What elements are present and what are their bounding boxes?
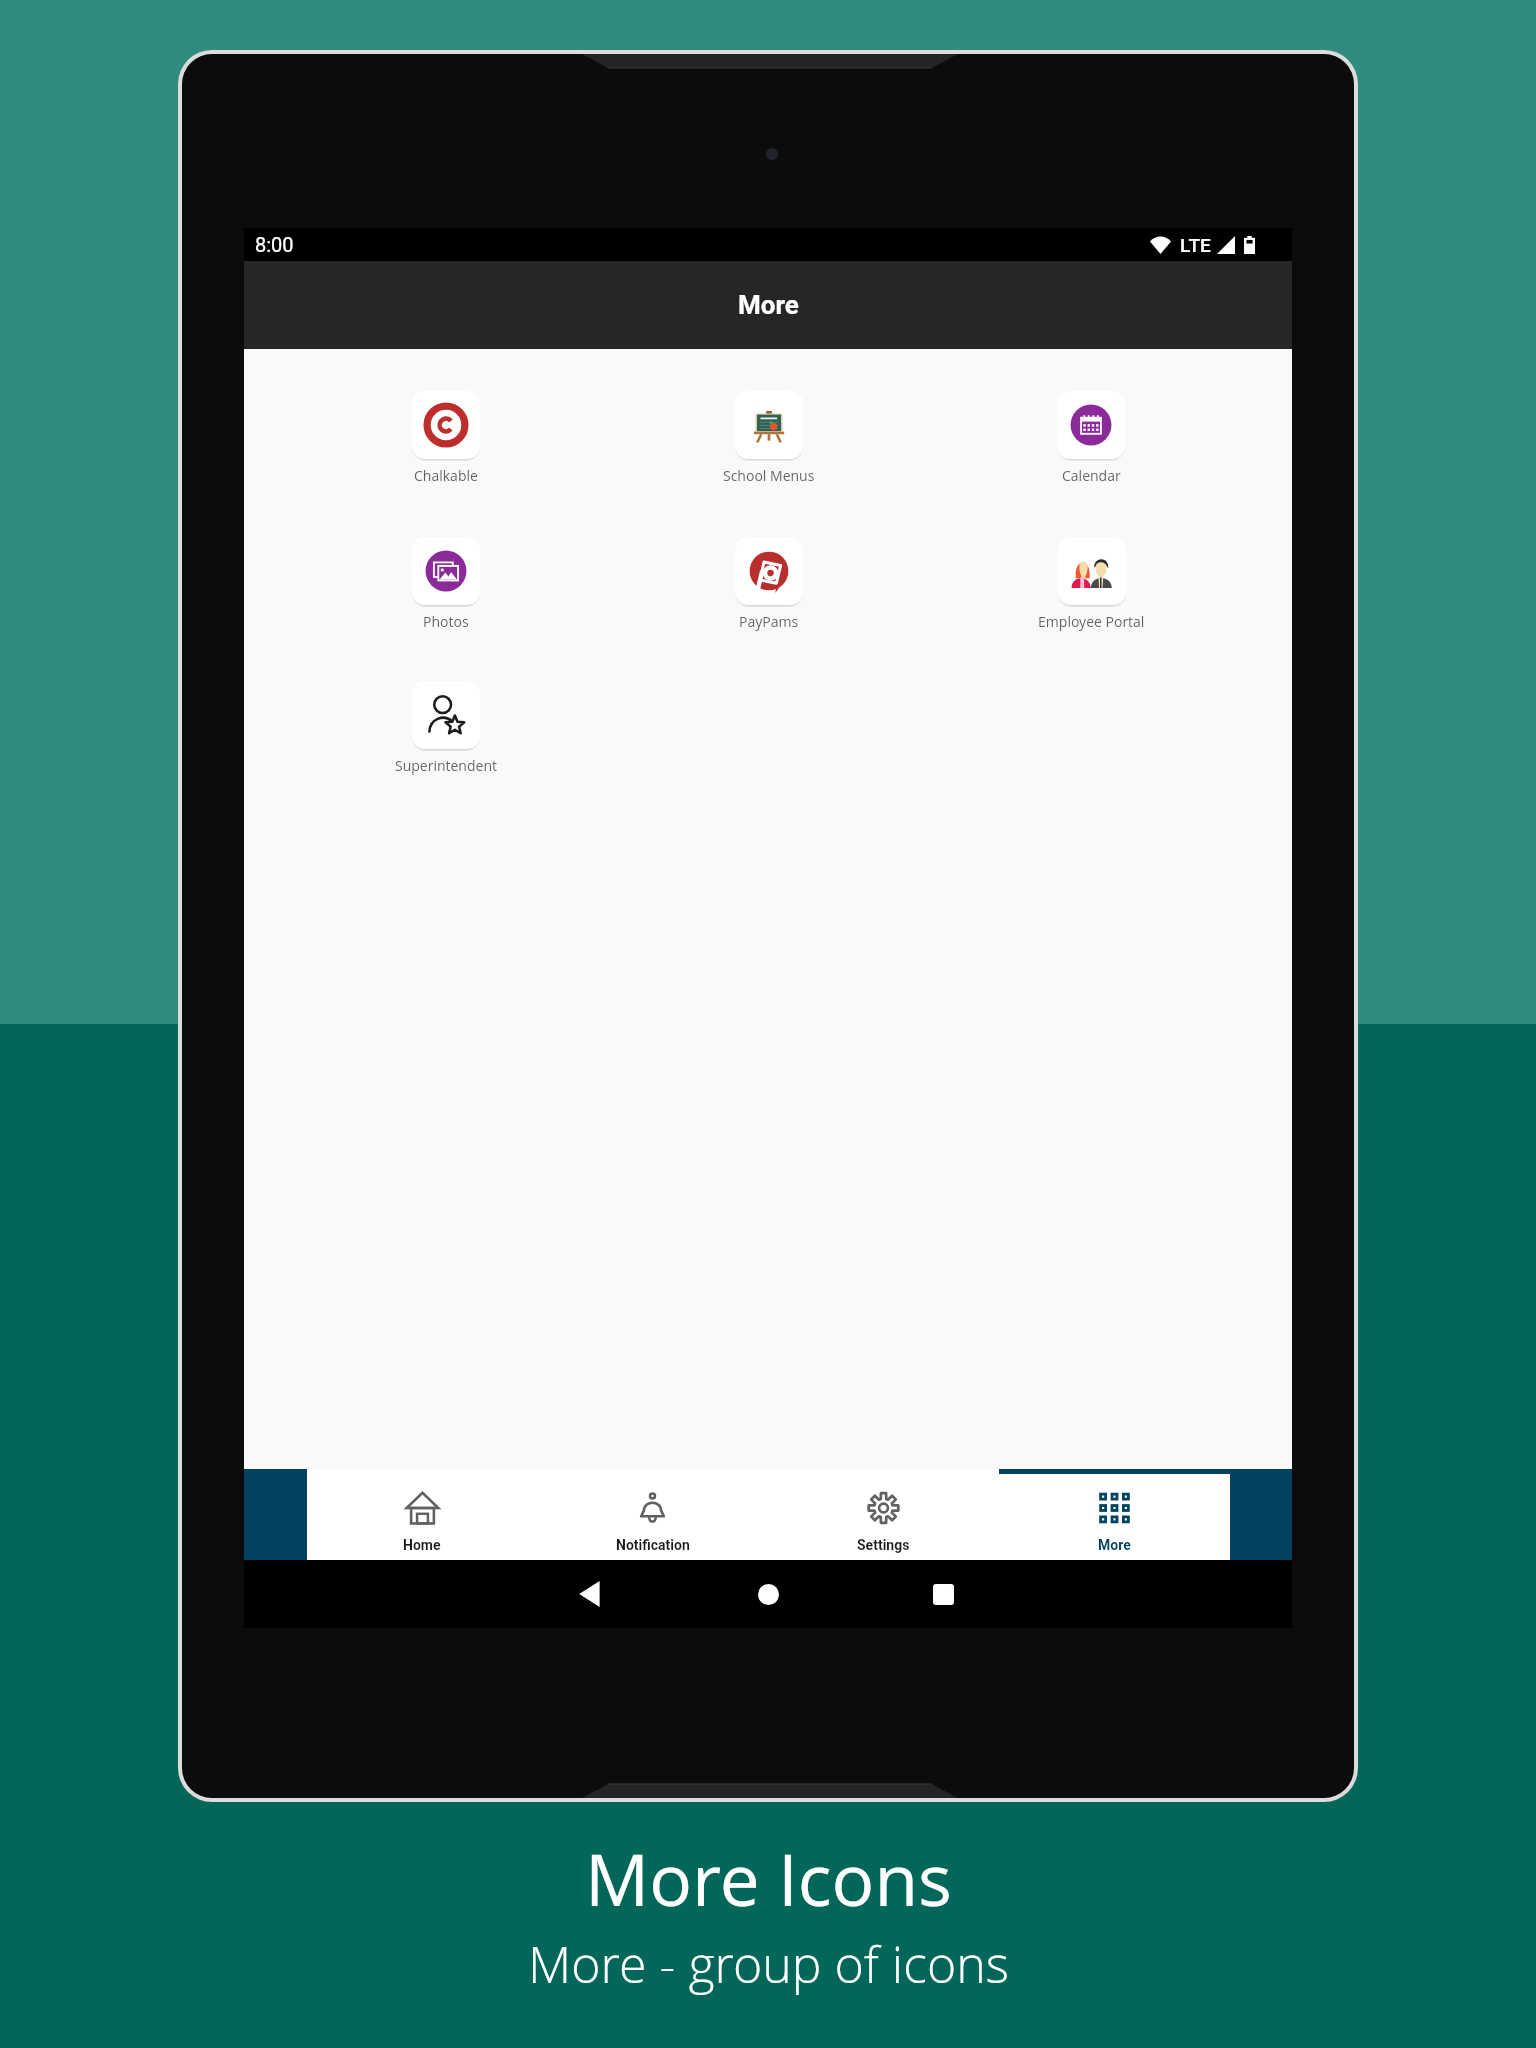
button[interactable]: Home: [724, 1560, 812, 1628]
other: Recent apps: [933, 1584, 954, 1605]
staticText: LTE: [1180, 234, 1211, 256]
staticText: Photos: [423, 612, 469, 631]
other: Back: [578, 1581, 602, 1607]
other: Home: [758, 1584, 779, 1605]
staticText: Employee Portal: [1038, 612, 1145, 631]
button[interactable]: Calendar: [1057, 391, 1125, 485]
staticText: School Menus: [723, 466, 815, 485]
staticText: Settings: [857, 1537, 910, 1553]
staticText: 8:00: [255, 233, 294, 256]
button[interactable]: Superintendent: [395, 681, 497, 775]
staticText: Chalkable: [414, 466, 478, 485]
button[interactable]: School Menus: [723, 391, 815, 485]
button[interactable]: Home: [307, 1469, 537, 1560]
button[interactable]: Employee Portal: [1038, 537, 1145, 631]
button[interactable]: Notification: [537, 1469, 768, 1560]
button[interactable]: Chalkable: [412, 391, 480, 485]
button[interactable]: Back: [546, 1560, 634, 1628]
staticText: Notification: [616, 1537, 690, 1553]
staticText: Superintendent: [395, 756, 497, 775]
staticText: Calendar: [1062, 466, 1121, 485]
staticText: More: [1098, 1537, 1131, 1553]
button[interactable]: Recent apps: [899, 1560, 987, 1628]
staticText: More - group of icons: [528, 1930, 1009, 1998]
staticText: More: [738, 290, 799, 320]
button[interactable]: More: [999, 1469, 1230, 1560]
staticText: PayPams: [739, 612, 799, 631]
button[interactable]: PayPams: [735, 537, 803, 631]
staticText: More Icons: [585, 1830, 952, 1927]
button[interactable]: Settings: [768, 1469, 999, 1560]
button[interactable]: Photos: [412, 537, 480, 631]
staticText: Home: [403, 1537, 441, 1553]
